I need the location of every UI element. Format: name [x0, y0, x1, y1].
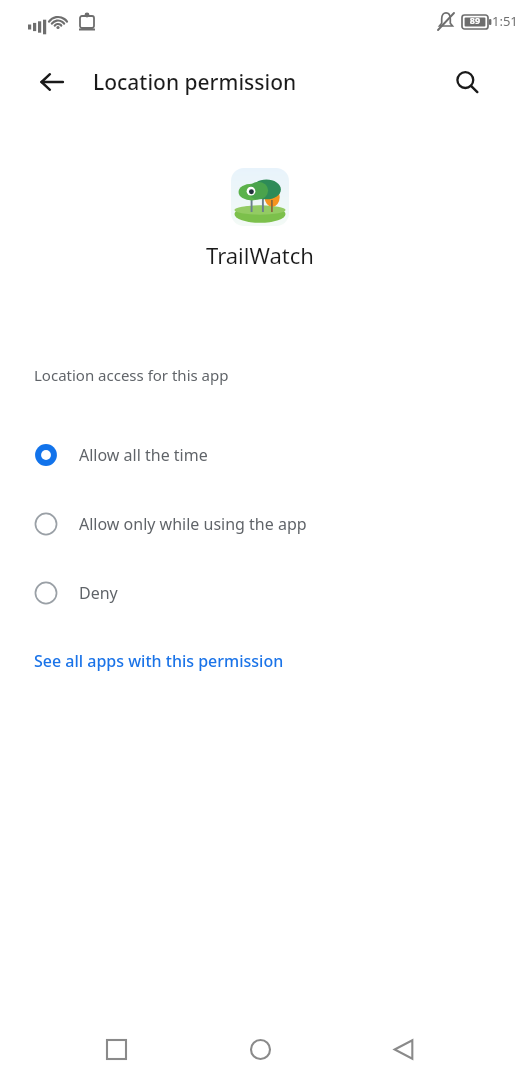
- staticText: TrailWatch: [206, 240, 314, 270]
- button[interactable]: Allow all the time: [0, 420, 519, 489]
- button[interactable]: See all apps with this permission: [20, 642, 298, 680]
- staticText: Allow only while using the app: [79, 513, 307, 535]
- staticText: Location access for this app: [34, 365, 229, 385]
- button[interactable]: Search: [443, 58, 491, 106]
- button[interactable]: Back: [375, 1021, 431, 1077]
- staticText: Location permission: [93, 68, 297, 97]
- staticText: See all apps with this permission: [34, 650, 284, 672]
- button[interactable]: Deny: [0, 558, 519, 627]
- staticText: 1:51: [492, 12, 519, 30]
- staticText: 89: [465, 14, 485, 26]
- button[interactable]: Home: [232, 1021, 288, 1077]
- staticText: Allow all the time: [79, 444, 208, 466]
- button[interactable]: Allow only while using the app: [0, 489, 519, 558]
- button[interactable]: Recent apps: [88, 1021, 144, 1077]
- staticText: Deny: [79, 582, 118, 604]
- button[interactable]: Back: [28, 58, 76, 106]
